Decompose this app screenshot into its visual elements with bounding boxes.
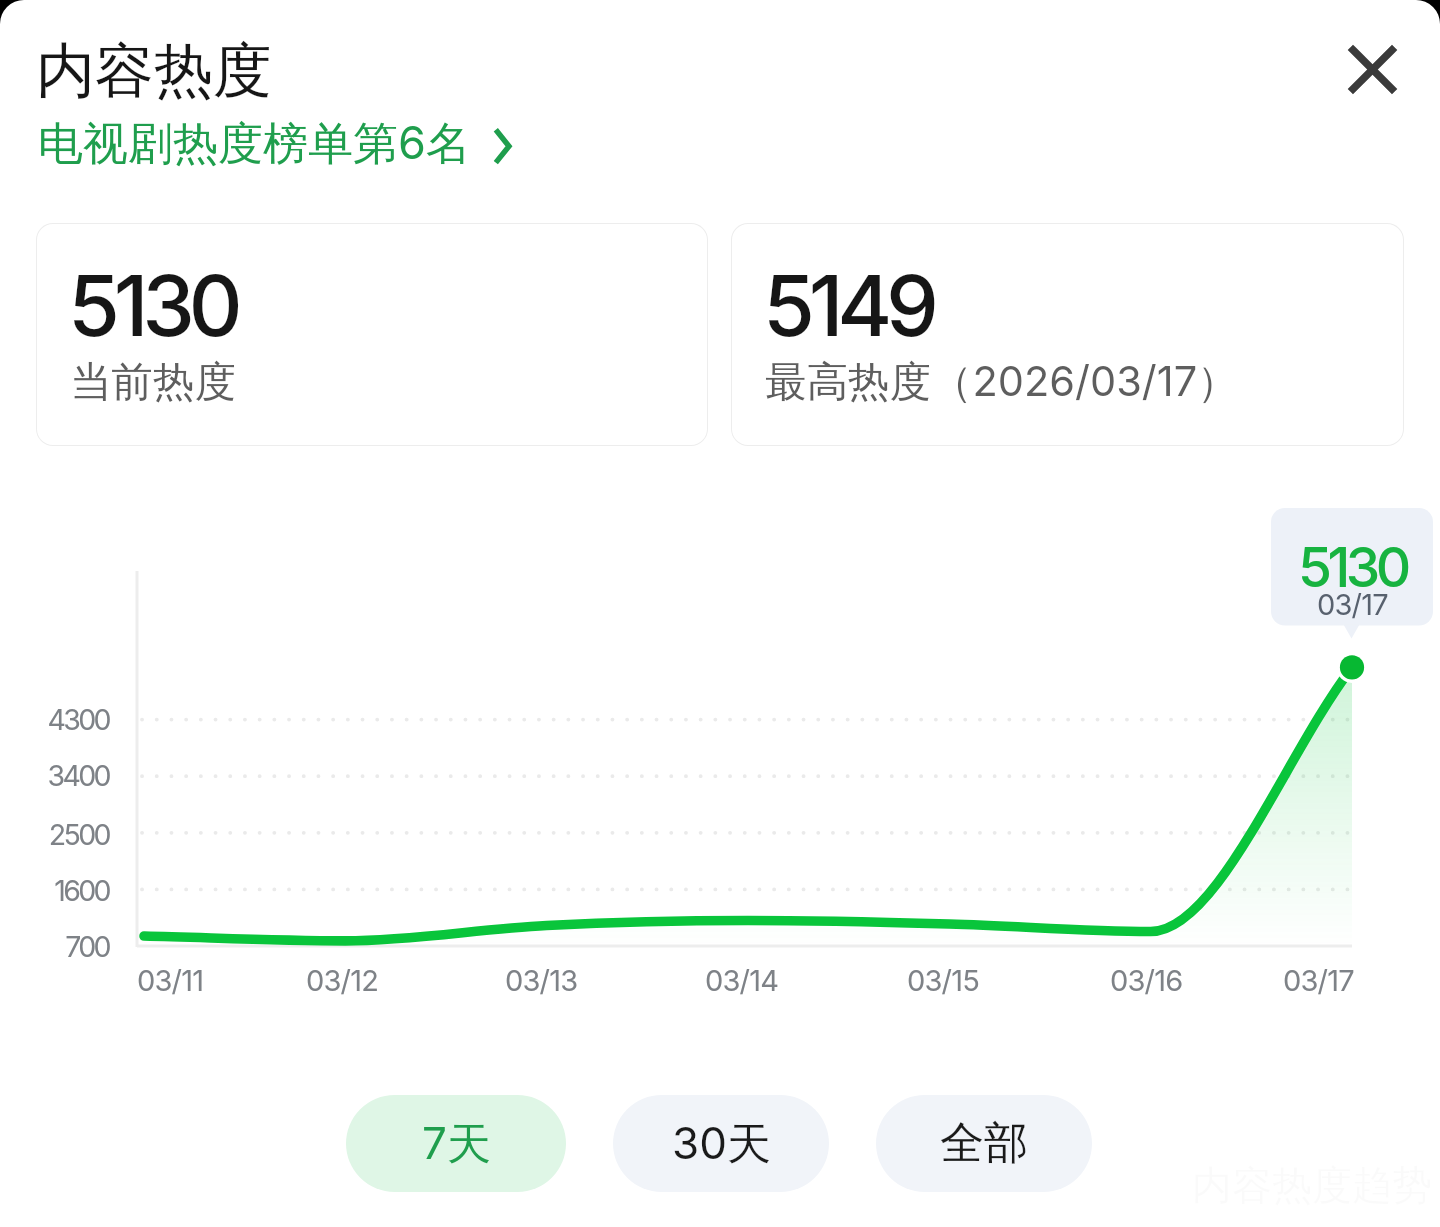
staticText: 03/17 [1317, 587, 1388, 622]
staticText: 700 [65, 929, 109, 963]
staticText: 03/17 [1283, 963, 1354, 998]
button[interactable]: 7天 [346, 1095, 566, 1192]
staticText: 电视剧热度榜单第6名 [38, 115, 471, 172]
staticText: 03/15 [907, 963, 980, 998]
staticText: 全部 [940, 1116, 1028, 1171]
staticText: 30天 [672, 1116, 771, 1172]
button[interactable]: 5149 [731, 223, 1404, 446]
button[interactable]: 30天 [613, 1095, 829, 1192]
staticText: 5130 [68, 255, 237, 357]
staticText: 03/11 [137, 963, 204, 998]
staticText: 最高热度（2026/03/17） [765, 356, 1239, 409]
button[interactable]: 电视剧热度榜单第6名 [35, 113, 525, 181]
staticText: 03/14 [705, 963, 779, 998]
staticText: 1600 [54, 873, 109, 907]
staticText: 内容热度 [36, 34, 272, 108]
staticText: 5130 [1298, 534, 1407, 601]
button[interactable]: 全部 [876, 1095, 1092, 1192]
button[interactable]: 5130 [36, 223, 708, 446]
staticText: 当前热度 [70, 356, 236, 408]
staticText: 03/12 [306, 963, 379, 998]
staticText: 4300 [47, 702, 109, 736]
staticText: 2500 [48, 817, 109, 851]
staticText: 3400 [47, 758, 109, 792]
staticText: 5149 [763, 255, 933, 357]
staticText: 03/16 [1110, 963, 1183, 998]
staticText: 03/13 [505, 963, 578, 998]
staticText: 7天 [422, 1116, 491, 1172]
button[interactable]: Close [1326, 23, 1418, 115]
